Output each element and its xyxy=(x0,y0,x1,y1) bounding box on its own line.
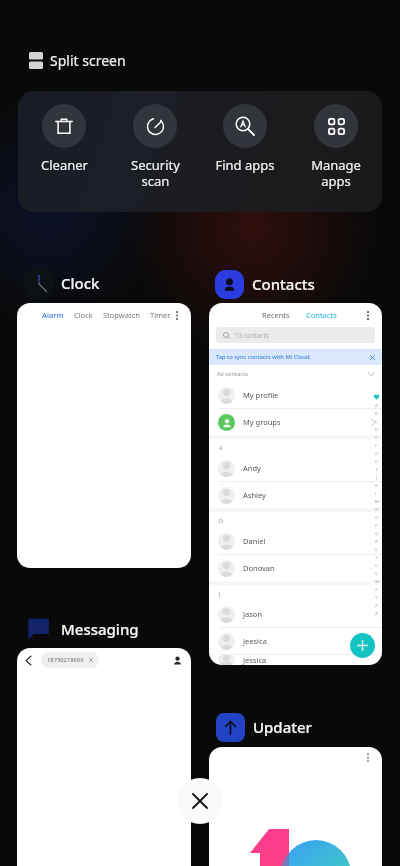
staticText: I xyxy=(376,467,378,473)
staticText: Security scan xyxy=(131,156,180,189)
staticText: Jessica xyxy=(243,655,267,665)
staticText: My profile xyxy=(243,390,279,400)
staticText: A xyxy=(219,444,223,451)
button[interactable]: Alarm xyxy=(17,303,191,568)
staticText: R xyxy=(375,539,378,545)
staticText: D xyxy=(375,427,379,433)
button[interactable]: My profile xyxy=(218,382,375,408)
staticText: E xyxy=(375,435,378,441)
button[interactable]: Updater xyxy=(214,711,312,743)
button[interactable]: Jason xyxy=(218,601,375,627)
staticText: G xyxy=(375,451,379,457)
staticText: B xyxy=(375,411,378,417)
button[interactable]: Recents xyxy=(209,303,382,665)
other: Manage apps xyxy=(328,118,345,135)
staticText: 13 contacts xyxy=(235,331,269,340)
other: Cleaner xyxy=(55,117,73,135)
button[interactable]: Donovan xyxy=(218,555,375,581)
button[interactable]: Add contact xyxy=(350,633,375,658)
staticText: S xyxy=(375,547,378,553)
staticText: W xyxy=(375,579,379,585)
staticText: Stopwatch xyxy=(103,310,140,320)
button[interactable] xyxy=(209,747,382,866)
staticText: 18730218609 xyxy=(47,656,84,664)
staticText: F xyxy=(375,443,378,449)
staticText: Z xyxy=(375,603,378,609)
other: Find apps xyxy=(235,116,255,136)
staticText: Alarm xyxy=(42,310,64,320)
staticText: Jeesica xyxy=(243,636,267,646)
staticText: Jason xyxy=(243,609,263,619)
staticText: V xyxy=(375,571,378,577)
staticText: My groups xyxy=(243,417,281,427)
staticText: T xyxy=(375,555,378,561)
button[interactable]: 18730218609 xyxy=(17,648,191,866)
button[interactable]: Security scan xyxy=(110,91,200,212)
staticText: O xyxy=(375,515,379,521)
staticText: Updater xyxy=(253,717,312,737)
staticText: J xyxy=(219,590,221,597)
staticText: Clock xyxy=(61,273,100,293)
staticText: N xyxy=(375,507,379,513)
button[interactable]: Find apps xyxy=(200,91,290,212)
button[interactable]: My groups xyxy=(218,409,375,435)
button[interactable]: Andy xyxy=(218,455,375,481)
staticText: Y xyxy=(375,595,378,601)
staticText: Ashley xyxy=(243,490,266,500)
staticText: Q xyxy=(375,531,379,537)
staticText: D xyxy=(219,517,224,524)
button[interactable]: Ashley xyxy=(218,482,375,508)
staticText: Contacts xyxy=(252,274,315,294)
staticText: U xyxy=(375,563,379,569)
staticText: Manage apps xyxy=(311,156,361,189)
staticText: Clock xyxy=(74,310,93,320)
staticText: P xyxy=(375,523,378,529)
staticText: # xyxy=(375,611,378,617)
button[interactable]: Close all xyxy=(177,778,223,824)
button[interactable]: Cleaner xyxy=(19,91,109,212)
button[interactable]: Split screen xyxy=(25,48,130,73)
staticText: H xyxy=(375,459,379,465)
button[interactable]: Daniel xyxy=(218,528,375,554)
staticText: Recents xyxy=(262,310,290,320)
staticText: J xyxy=(376,475,378,481)
other: Security scan xyxy=(146,117,165,136)
button[interactable]: Jessica xyxy=(218,655,375,665)
staticText: A xyxy=(375,403,378,409)
button[interactable]: Contacts xyxy=(213,268,315,300)
button[interactable]: Manage apps xyxy=(291,91,381,212)
staticText: Split screen xyxy=(50,51,126,70)
staticText: K xyxy=(375,483,378,489)
staticText: X xyxy=(375,587,378,593)
staticText: Timer xyxy=(150,310,171,320)
staticText: Daniel xyxy=(243,536,266,546)
staticText: All contacts xyxy=(217,370,249,378)
staticText: Donovan xyxy=(243,563,275,573)
staticText: C xyxy=(375,419,378,425)
staticText: Contacts xyxy=(306,310,337,320)
staticText: Find apps xyxy=(215,156,275,174)
button[interactable]: Messaging xyxy=(22,613,139,645)
staticText: L xyxy=(375,491,378,497)
staticText: M xyxy=(375,499,379,505)
button[interactable]: Clock xyxy=(22,267,100,299)
staticText: Andy xyxy=(243,463,261,473)
button[interactable]: Jeesica xyxy=(218,628,375,654)
staticText: Messaging xyxy=(61,619,139,639)
staticText: Tap to sync contacts with Mi Cloud. xyxy=(216,353,312,361)
staticText: Cleaner xyxy=(41,156,88,174)
